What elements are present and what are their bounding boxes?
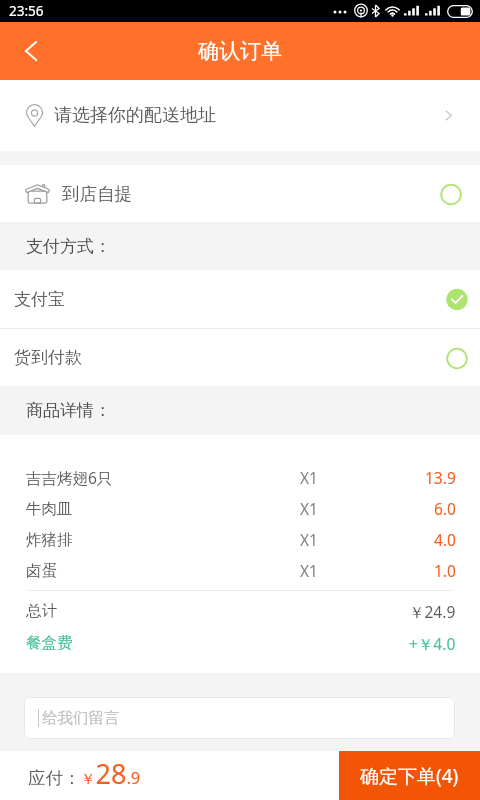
staticText: 牛肉皿 <box>26 499 73 519</box>
staticText: ￥24.9 <box>409 601 456 622</box>
button[interactable]: 支付宝 <box>0 270 480 328</box>
staticText: 货到付款 <box>14 347 82 368</box>
button[interactable]: 货到付款 <box>0 329 480 386</box>
staticText: 炸猪排 <box>26 530 73 550</box>
staticText: 商品详情： <box>26 400 111 421</box>
button[interactable]: 请选择你的配送地址 <box>0 80 480 151</box>
staticText: 应付：￥28.9 <box>28 755 141 792</box>
staticText: 请选择你的配送地址 <box>54 104 216 127</box>
staticText: 1.0 <box>434 560 456 581</box>
staticText: 4.0 <box>434 529 456 550</box>
staticText: X1 <box>300 529 318 550</box>
staticText: 餐盒费 <box>26 633 73 653</box>
button[interactable]: 确定下单(4) <box>339 751 480 800</box>
staticText: 支付宝 <box>14 289 65 310</box>
staticText: 总计 <box>26 601 57 621</box>
staticText: 确认订单 <box>198 38 282 64</box>
staticText: +￥4.0 <box>409 633 456 654</box>
staticText: X1 <box>300 560 318 581</box>
staticText: 23:56 <box>9 2 44 20</box>
staticText: 13.9 <box>425 467 456 488</box>
staticText: 到店自提 <box>62 183 132 205</box>
staticText: X1 <box>300 498 318 519</box>
staticText: 卤蛋 <box>26 561 57 581</box>
button[interactable]: 到店自提 <box>0 165 480 222</box>
staticText: 6.0 <box>434 498 456 519</box>
staticText: 支付方式： <box>26 236 111 257</box>
staticText: X1 <box>300 467 318 488</box>
staticText: 吉吉烤翅6只 <box>26 467 113 488</box>
staticText: 给我们留言 <box>42 708 120 728</box>
staticText: 确定下单(4) <box>360 763 459 789</box>
button[interactable]: 给我们留言 <box>24 697 455 739</box>
button[interactable]: Back <box>0 22 56 80</box>
